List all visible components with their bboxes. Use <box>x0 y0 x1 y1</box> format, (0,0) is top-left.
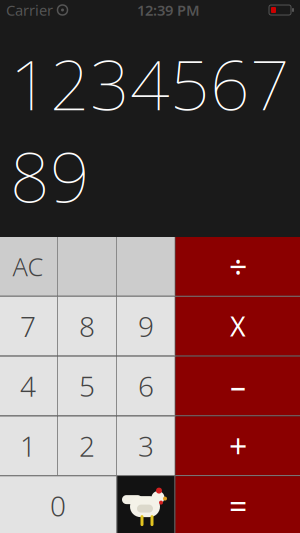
staticText: 0 <box>50 487 66 524</box>
button[interactable]: Equals <box>175 476 300 533</box>
button[interactable]: 5 <box>58 357 116 415</box>
staticText: 4 <box>20 367 36 405</box>
button[interactable] <box>117 237 175 296</box>
button[interactable]: Multiply <box>175 297 300 356</box>
button[interactable]: Add <box>175 416 300 475</box>
staticText: 2 <box>79 427 95 464</box>
button[interactable]: 4 <box>0 357 57 415</box>
staticText: 6 <box>138 367 154 405</box>
staticText: X <box>230 308 246 344</box>
staticText: 8 <box>79 308 95 345</box>
button[interactable]: 8 <box>58 297 116 356</box>
staticText: AC <box>12 250 43 283</box>
button[interactable]: 1 <box>0 416 57 475</box>
button[interactable]: Subtract <box>175 357 300 415</box>
button[interactable] <box>58 237 116 296</box>
button[interactable]: Divide <box>175 237 300 296</box>
staticText: – <box>230 365 246 407</box>
staticText: Carrier <box>6 0 53 20</box>
button[interactable]: AC <box>0 237 57 296</box>
staticText: ÷ <box>229 245 247 288</box>
staticText: 123456789 <box>10 37 290 221</box>
button[interactable]: 7 <box>0 297 57 356</box>
button[interactable]: 6 <box>117 357 175 415</box>
button[interactable]: 3 <box>117 416 175 475</box>
staticText: = <box>229 484 247 527</box>
staticText: 5 <box>79 367 95 405</box>
button[interactable]: 0 <box>0 476 116 533</box>
button[interactable]: 2 <box>58 416 116 475</box>
staticText: 1 <box>20 427 36 464</box>
staticText: 9 <box>138 308 154 345</box>
staticText: 12:39 PM <box>137 0 200 20</box>
staticText: 3 <box>138 427 154 464</box>
staticText: + <box>229 425 247 467</box>
button[interactable]: 9 <box>117 297 175 356</box>
staticText: 7 <box>20 308 36 345</box>
button[interactable]: Chicken <box>117 476 174 533</box>
